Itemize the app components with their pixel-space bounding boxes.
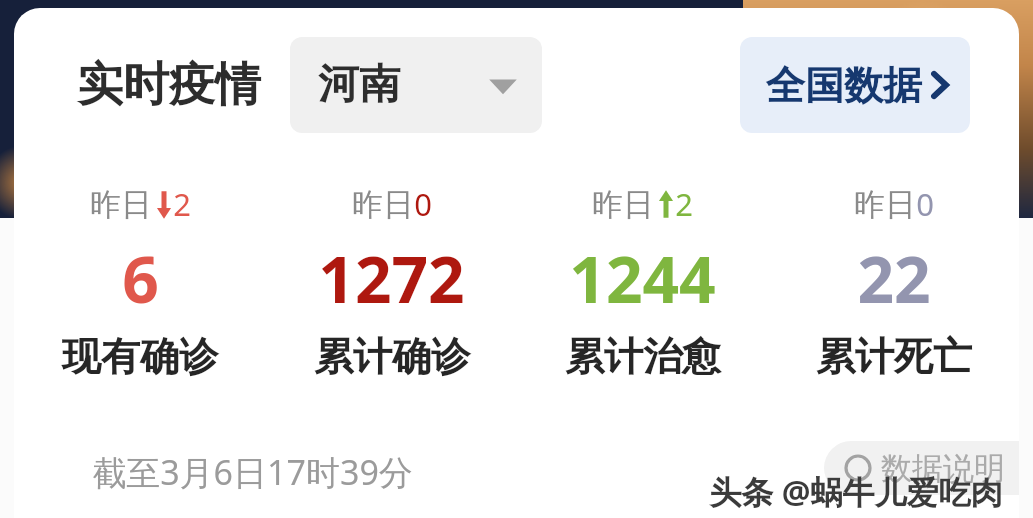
- staticText: 全国数据: [766, 61, 922, 110]
- button[interactable]: 昨日: [768, 183, 1019, 381]
- staticText: 0: [916, 183, 934, 225]
- staticText: 实时疫情: [77, 56, 261, 114]
- staticText: 数据说明: [881, 449, 1005, 488]
- staticText: 22: [857, 235, 931, 322]
- button[interactable]: 昨日: [14, 183, 266, 381]
- staticText: 2: [675, 183, 693, 225]
- staticText: 2: [173, 183, 191, 225]
- staticText: 头条 @蜗牛儿爱吃肉: [709, 470, 1003, 514]
- staticText: 1244: [569, 235, 716, 322]
- staticText: 现有确诊: [62, 332, 218, 381]
- staticText: 累计治愈: [565, 332, 721, 381]
- button[interactable]: 全国数据: [740, 37, 970, 133]
- staticText: 昨日: [592, 185, 654, 224]
- staticText: 昨日: [352, 185, 414, 224]
- staticText: 6: [122, 235, 159, 322]
- button[interactable]: 昨日: [266, 183, 517, 381]
- button[interactable]: 河南: [290, 37, 542, 133]
- staticText: 0: [414, 183, 432, 225]
- staticText: 累计确诊: [314, 332, 470, 381]
- staticText: 截至3月6日17时39分: [92, 449, 413, 495]
- staticText: 昨日: [90, 185, 152, 224]
- button[interactable]: 昨日: [517, 183, 768, 381]
- staticText: 昨日: [854, 185, 916, 224]
- staticText: 1272: [318, 235, 465, 322]
- staticText: 河南: [318, 59, 400, 111]
- button[interactable]: 数据说明: [824, 441, 1019, 495]
- staticText: 累计死亡: [816, 332, 972, 381]
